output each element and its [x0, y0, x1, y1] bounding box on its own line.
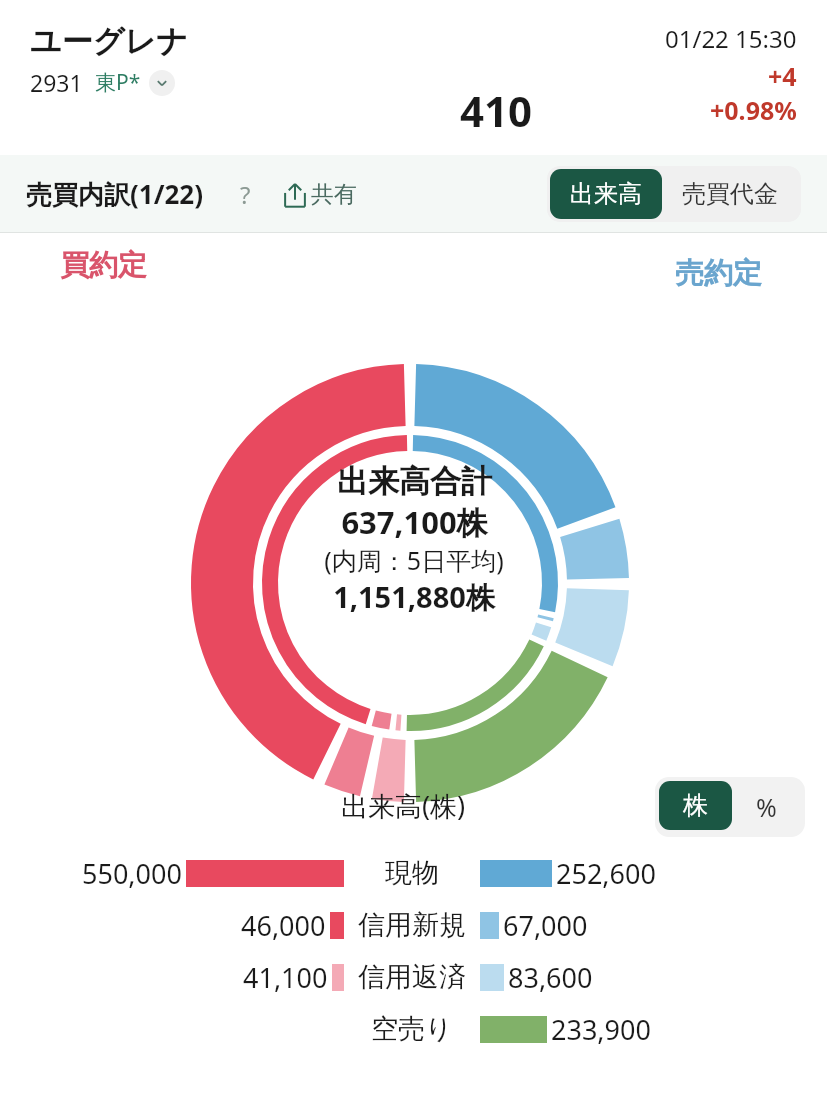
- staticText: 売買代金: [682, 179, 778, 209]
- button[interactable]: 株: [659, 781, 732, 830]
- staticText: 空売り: [371, 1012, 453, 1046]
- staticText: 46,000: [241, 907, 326, 944]
- staticText: 01/22 15:30: [665, 22, 797, 55]
- button[interactable]: %: [732, 781, 801, 833]
- staticText: 67,000: [503, 907, 588, 944]
- staticText: 出来高: [570, 179, 642, 209]
- staticText: +4: [768, 59, 797, 93]
- staticText: (内周：5日平均): [324, 543, 504, 577]
- staticText: 1,151,880株: [333, 577, 495, 617]
- staticText: ユーグレナ: [30, 22, 188, 61]
- staticText: 共有: [311, 180, 357, 209]
- button[interactable]: 売買代金: [662, 169, 798, 219]
- staticText: 出来高合計: [337, 462, 492, 501]
- staticText: +0.98%: [710, 93, 797, 127]
- button[interactable]: 市場を選択: [149, 70, 175, 96]
- staticText: 売約定: [675, 255, 762, 292]
- staticText: 出来高(株): [341, 787, 466, 824]
- staticText: 買約定: [60, 247, 147, 284]
- staticText: 41,100: [243, 959, 328, 996]
- staticText: 83,600: [508, 959, 593, 996]
- button[interactable]: 出来高: [550, 169, 662, 219]
- staticText: 233,900: [551, 1011, 651, 1048]
- staticText: 252,600: [556, 855, 656, 892]
- staticText: 東P*: [95, 68, 141, 97]
- button[interactable]: 共有: [278, 176, 361, 213]
- staticText: 410: [460, 82, 533, 139]
- staticText: 550,000: [82, 855, 182, 892]
- staticText: ?: [240, 178, 251, 211]
- staticText: %: [756, 790, 777, 824]
- staticText: 現物: [385, 856, 439, 890]
- staticText: 株: [683, 790, 708, 821]
- button[interactable]: ヘルプ: [228, 177, 262, 211]
- staticText: 637,100株: [341, 501, 488, 543]
- staticText: 信用返済: [358, 960, 466, 994]
- staticText: 信用新規: [358, 908, 466, 942]
- staticText: 売買内訳(1/22): [26, 176, 204, 212]
- staticText: 2931: [30, 67, 83, 98]
